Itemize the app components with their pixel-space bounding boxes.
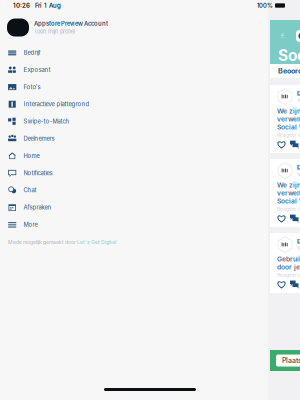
staticText: Home: [23, 152, 39, 159]
button[interactable]: Deelnemers: [0, 130, 268, 147]
staticText: Reageer of like dit bericht: [277, 272, 300, 278]
staticText: Interactieve plattegrond: [23, 101, 89, 108]
button[interactable]: Swipe-to-Match: [0, 113, 268, 130]
staticText: Gebruik de: [277, 255, 300, 263]
staticText: 10:24 1 aug: [297, 246, 300, 252]
staticText: Social Wal: [277, 123, 300, 131]
staticText: Appstore Preview Account: [34, 20, 108, 27]
staticText: Social Wal: [277, 197, 300, 205]
staticText: Social Wall: [278, 46, 300, 65]
staticText: Bedrijf: [23, 49, 40, 56]
staticText: Beoordeel deze sessie: [278, 67, 300, 75]
button[interactable]: Settings: [296, 30, 300, 42]
staticText: 10:26: [13, 2, 30, 9]
staticText: Duco van der Linden: [297, 89, 300, 97]
staticText: 10:24 1 aug: [297, 172, 300, 178]
button[interactable]: Plaats een bericht: [276, 354, 300, 366]
staticText: More: [23, 221, 37, 228]
staticText: Fri 1 Aug: [35, 2, 61, 9]
staticText: Deelnemers: [23, 135, 54, 142]
staticText: Swipe-to-Match: [23, 118, 69, 125]
staticText: Chat: [23, 187, 36, 194]
staticText: Reageer of like dit bericht: [277, 206, 300, 212]
staticText: Foto's: [23, 83, 40, 91]
staticText: verwelkom: [277, 189, 300, 197]
button[interactable]: Like: [277, 280, 286, 289]
staticText: Duco van der Linden: [297, 163, 300, 171]
staticText: Mede mogelijk gemaakt door: [8, 239, 77, 245]
button[interactable]: Bedrijf: [0, 44, 268, 61]
button[interactable]: Menu: [279, 32, 286, 39]
button[interactable]: Comment: [290, 140, 299, 149]
button[interactable]: Afspraken: [0, 199, 268, 216]
staticText: Notificaties: [23, 169, 52, 177]
staticText: We zijn ge: [277, 181, 300, 189]
staticText: 10:24 1 aug: [297, 98, 300, 104]
button[interactable]: Like: [277, 140, 286, 149]
button[interactable]: Comment: [290, 280, 299, 289]
staticText: Afspraken: [23, 204, 51, 211]
button[interactable]: Comment: [290, 214, 299, 223]
button[interactable]: Like: [277, 214, 286, 223]
button[interactable]: Interactieve plattegrond: [0, 96, 268, 113]
button[interactable]: Foto's: [0, 78, 268, 96]
staticText: Reageer of like dit bericht: [277, 132, 300, 138]
staticText: We zijn ge: [277, 107, 300, 115]
button[interactable]: Notificaties: [0, 164, 268, 182]
staticText: Let's Get Digital: [77, 239, 116, 245]
button[interactable]: Appstore Preview Account: [0, 16, 268, 39]
staticText: door je ee: [277, 263, 300, 271]
button[interactable]: Home: [0, 147, 268, 164]
staticText: Plaats een bericht: [282, 356, 300, 365]
staticText: Duco van der Linden: [297, 237, 300, 245]
button[interactable]: More: [0, 216, 268, 233]
staticText: Toon mijn profiel: [34, 28, 75, 35]
button[interactable]: Chat: [0, 182, 268, 199]
staticText: 100%: [257, 2, 273, 9]
button[interactable]: Exposant: [0, 61, 268, 78]
staticText: Exposant: [23, 66, 50, 73]
staticText: verwelkom: [277, 115, 300, 123]
